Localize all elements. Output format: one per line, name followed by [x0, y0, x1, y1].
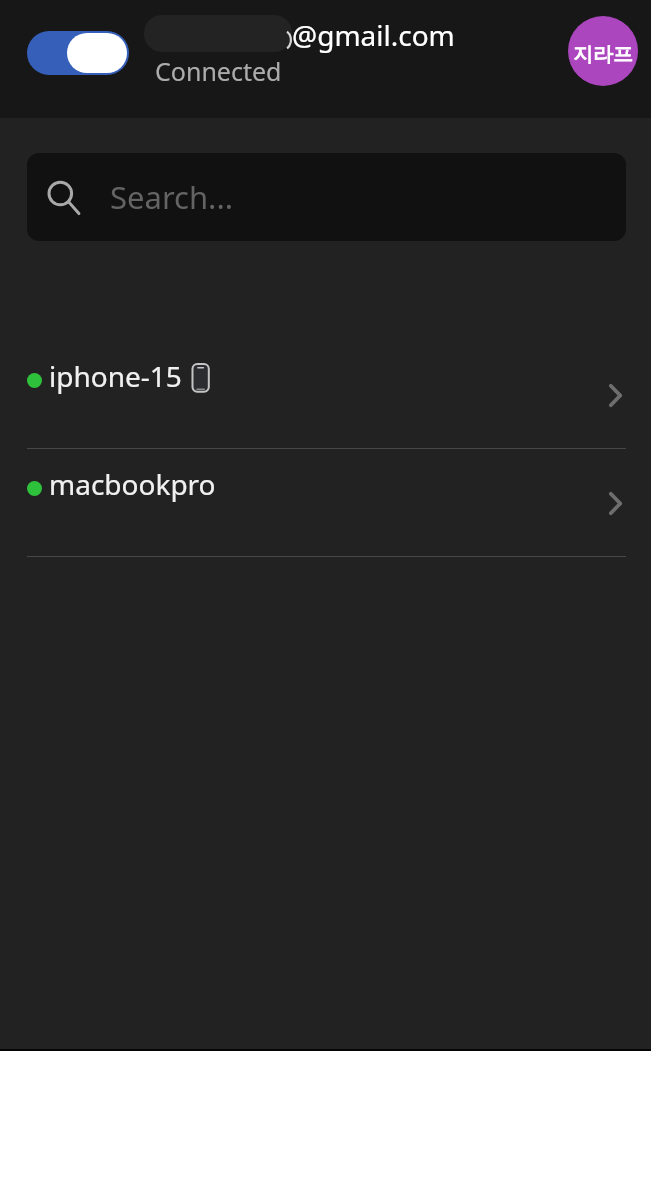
other: Open iphone-15 [609, 384, 622, 407]
staticText: Connected [155, 54, 282, 88]
button[interactable]: Account avatar [568, 16, 638, 86]
button[interactable]: VPN connection toggle, on [27, 31, 129, 75]
staticText: Search... [110, 176, 234, 218]
staticText: 지라프 [573, 42, 633, 67]
staticText: iphone-15 [49, 357, 182, 395]
button[interactable]: Search... [27, 153, 626, 241]
button[interactable]: iphone-15 [0, 341, 651, 449]
staticText: macbookpro [49, 465, 216, 503]
button[interactable]: macbookpro [0, 449, 651, 557]
staticText: @gmail.com [292, 16, 455, 54]
other: Open macbookpro [609, 492, 622, 515]
